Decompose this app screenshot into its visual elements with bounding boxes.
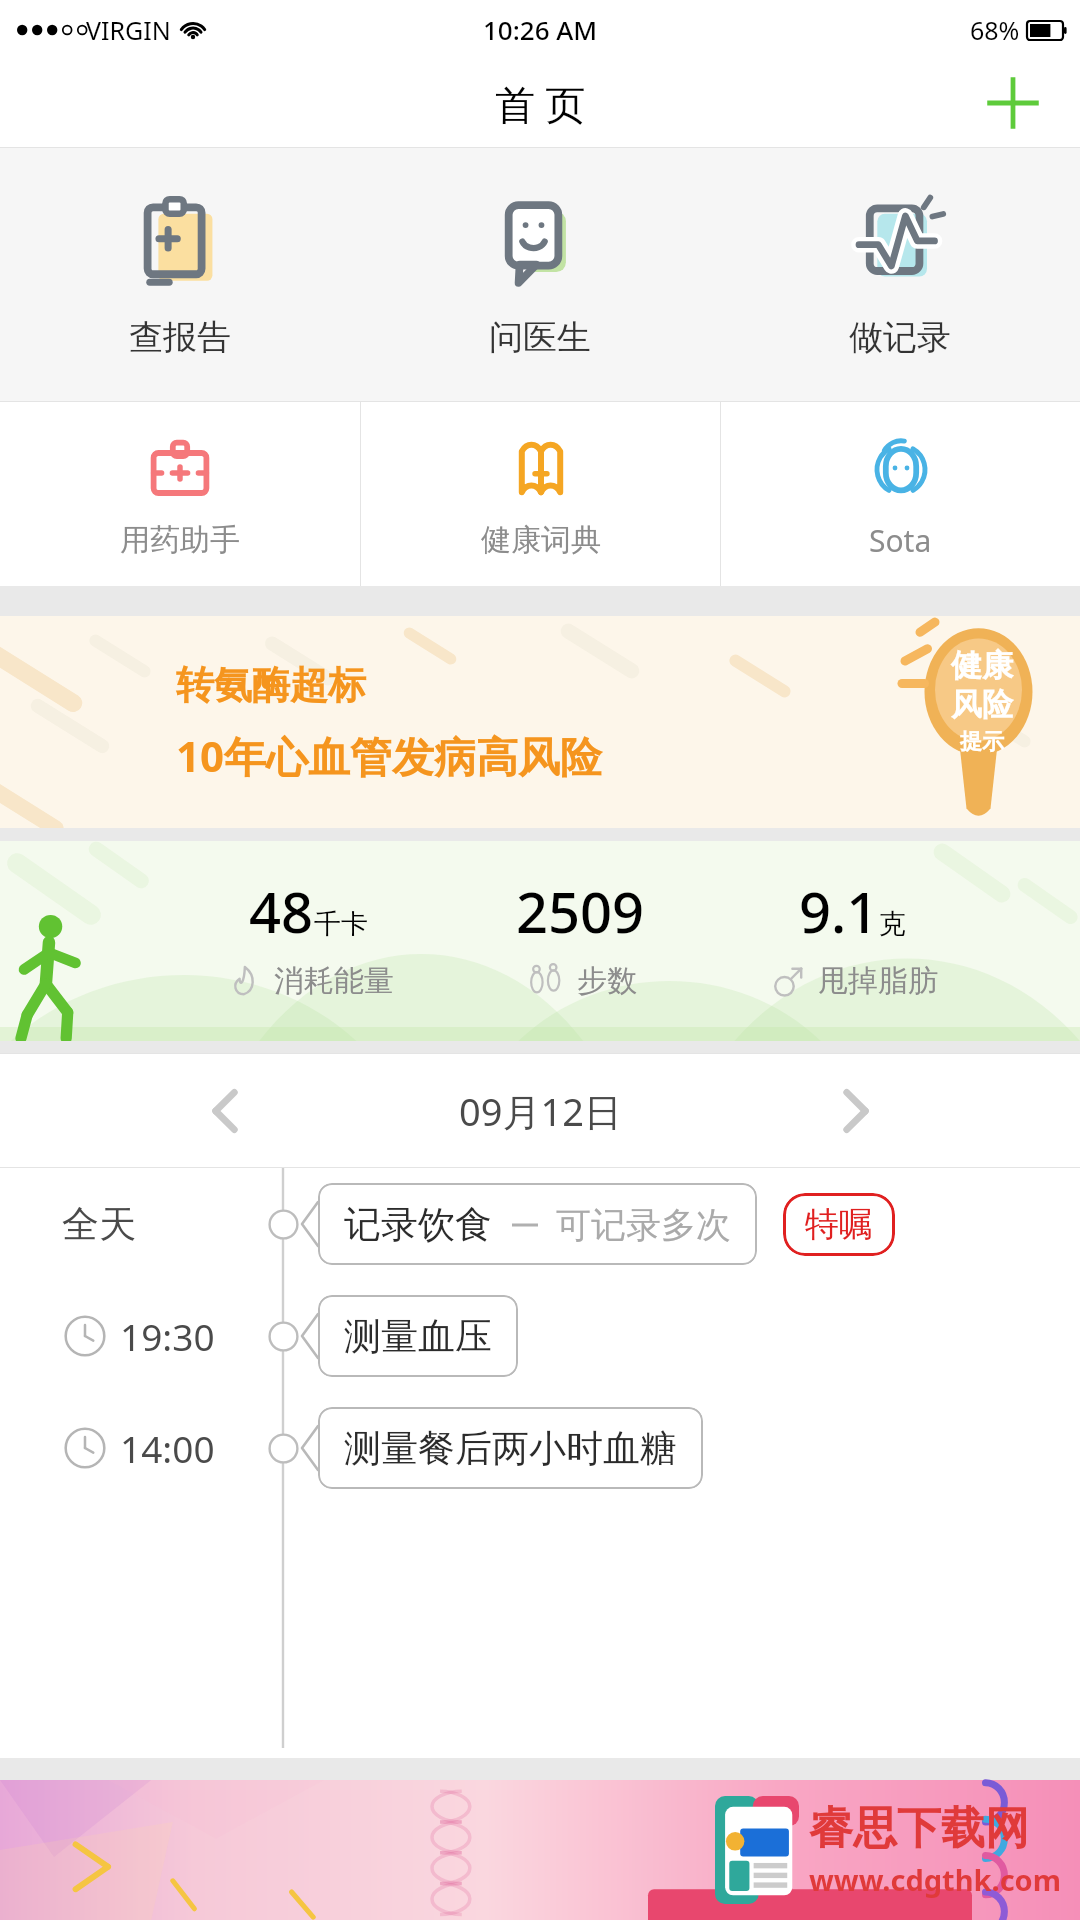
staticText: 09月12日 xyxy=(459,1085,622,1137)
staticText: 甩掉脂肪 xyxy=(818,962,938,1000)
staticText: 千卡 xyxy=(314,907,368,941)
button[interactable]: 14:00 xyxy=(0,1392,1080,1504)
staticText: 2509 xyxy=(516,873,645,949)
staticText: 10年心血管发病高风险 xyxy=(176,727,603,784)
button[interactable]: Previous day xyxy=(180,1066,270,1156)
button[interactable]: 睿思下载网 xyxy=(0,1780,1080,1920)
staticText: 睿思下载网 xyxy=(809,1801,1029,1856)
button[interactable]: 问医生 xyxy=(360,148,720,401)
button[interactable]: 全天 xyxy=(0,1168,1080,1280)
staticText: 健康词典 xyxy=(481,521,601,559)
staticText: VIRGIN xyxy=(86,13,171,47)
staticText: 可记录多次 xyxy=(556,1203,731,1247)
staticText: 9.1 xyxy=(799,873,879,949)
staticText: 用药助手 xyxy=(120,521,240,559)
staticText: 首 页 xyxy=(495,76,586,131)
staticText: 风险 xyxy=(951,685,1013,724)
button[interactable]: 查报告 xyxy=(0,148,360,401)
staticText: 提示 xyxy=(960,728,1004,756)
button[interactable]: 48 xyxy=(0,841,1080,1041)
button[interactable]: Next day xyxy=(810,1066,900,1156)
staticText: 全天 xyxy=(62,1201,136,1248)
button[interactable]: 用药助手 xyxy=(0,402,360,586)
staticText: 测量餐后两小时血糖 xyxy=(344,1425,677,1472)
staticText: 做记录 xyxy=(849,316,951,359)
staticText: 19:30 xyxy=(120,1311,215,1361)
staticText: 消耗能量 xyxy=(274,962,394,1000)
staticText: 48 xyxy=(249,873,314,949)
staticText: 克 xyxy=(879,907,906,941)
button[interactable]: 19:30 xyxy=(0,1280,1080,1392)
button[interactable]: 转氨酶超标 xyxy=(0,616,1080,828)
staticText: 步数 xyxy=(577,962,637,1000)
staticText: 14:00 xyxy=(120,1423,215,1473)
staticText: 转氨酶超标 xyxy=(176,661,366,709)
staticText: www.cdgthk.com xyxy=(809,1860,1062,1899)
staticText: 68% xyxy=(970,13,1020,47)
staticText: 10:26 AM xyxy=(483,12,598,47)
staticText: 查报告 xyxy=(129,316,231,359)
button[interactable]: Add xyxy=(976,66,1050,140)
staticText: 特嘱 xyxy=(805,1203,873,1246)
button[interactable]: 特嘱 xyxy=(783,1193,895,1256)
staticText: 健康 xyxy=(951,646,1013,685)
button[interactable]: 健康词典 xyxy=(361,402,720,586)
button[interactable]: Sota xyxy=(721,402,1080,586)
staticText: 问医生 xyxy=(489,316,591,359)
staticText: Sota xyxy=(869,520,932,561)
staticText: 测量血压 xyxy=(344,1313,492,1360)
button[interactable]: 做记录 xyxy=(720,148,1080,401)
staticText: 记录饮食 xyxy=(344,1201,492,1248)
